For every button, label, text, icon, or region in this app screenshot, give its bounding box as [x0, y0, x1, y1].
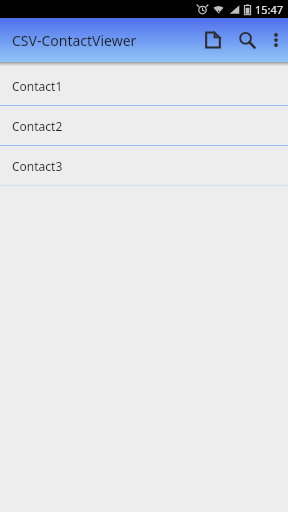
button[interactable]: Contact3	[0, 146, 288, 185]
staticText: Contact2	[12, 118, 63, 134]
button[interactable]: Contact1	[0, 66, 288, 105]
staticText: 15:47	[255, 2, 284, 17]
button[interactable]: More options	[264, 18, 288, 62]
button[interactable]: Contact2	[0, 106, 288, 145]
staticText: CSV-ContactViewer	[12, 31, 137, 50]
button[interactable]: Search	[230, 18, 264, 62]
staticText: Contact3	[12, 158, 63, 174]
button[interactable]: Open file	[196, 18, 230, 62]
staticText: Contact1	[12, 78, 63, 94]
